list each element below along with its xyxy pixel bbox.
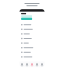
- button[interactable]: [21, 22, 44, 27]
- button[interactable]: Tab: [19, 62, 24, 67]
- button[interactable]: [21, 41, 44, 45]
- button[interactable]: [21, 27, 44, 32]
- button[interactable]: Tab: [39, 62, 44, 67]
- button[interactable]: [21, 55, 44, 59]
- button[interactable]: [21, 32, 44, 36]
- button[interactable]: [21, 45, 44, 50]
- button[interactable]: Tab: [34, 62, 39, 67]
- button[interactable]: [21, 50, 44, 55]
- button[interactable]: Tab: [24, 62, 29, 67]
- button[interactable]: [21, 36, 44, 41]
- button[interactable]: Tab: [29, 62, 34, 67]
